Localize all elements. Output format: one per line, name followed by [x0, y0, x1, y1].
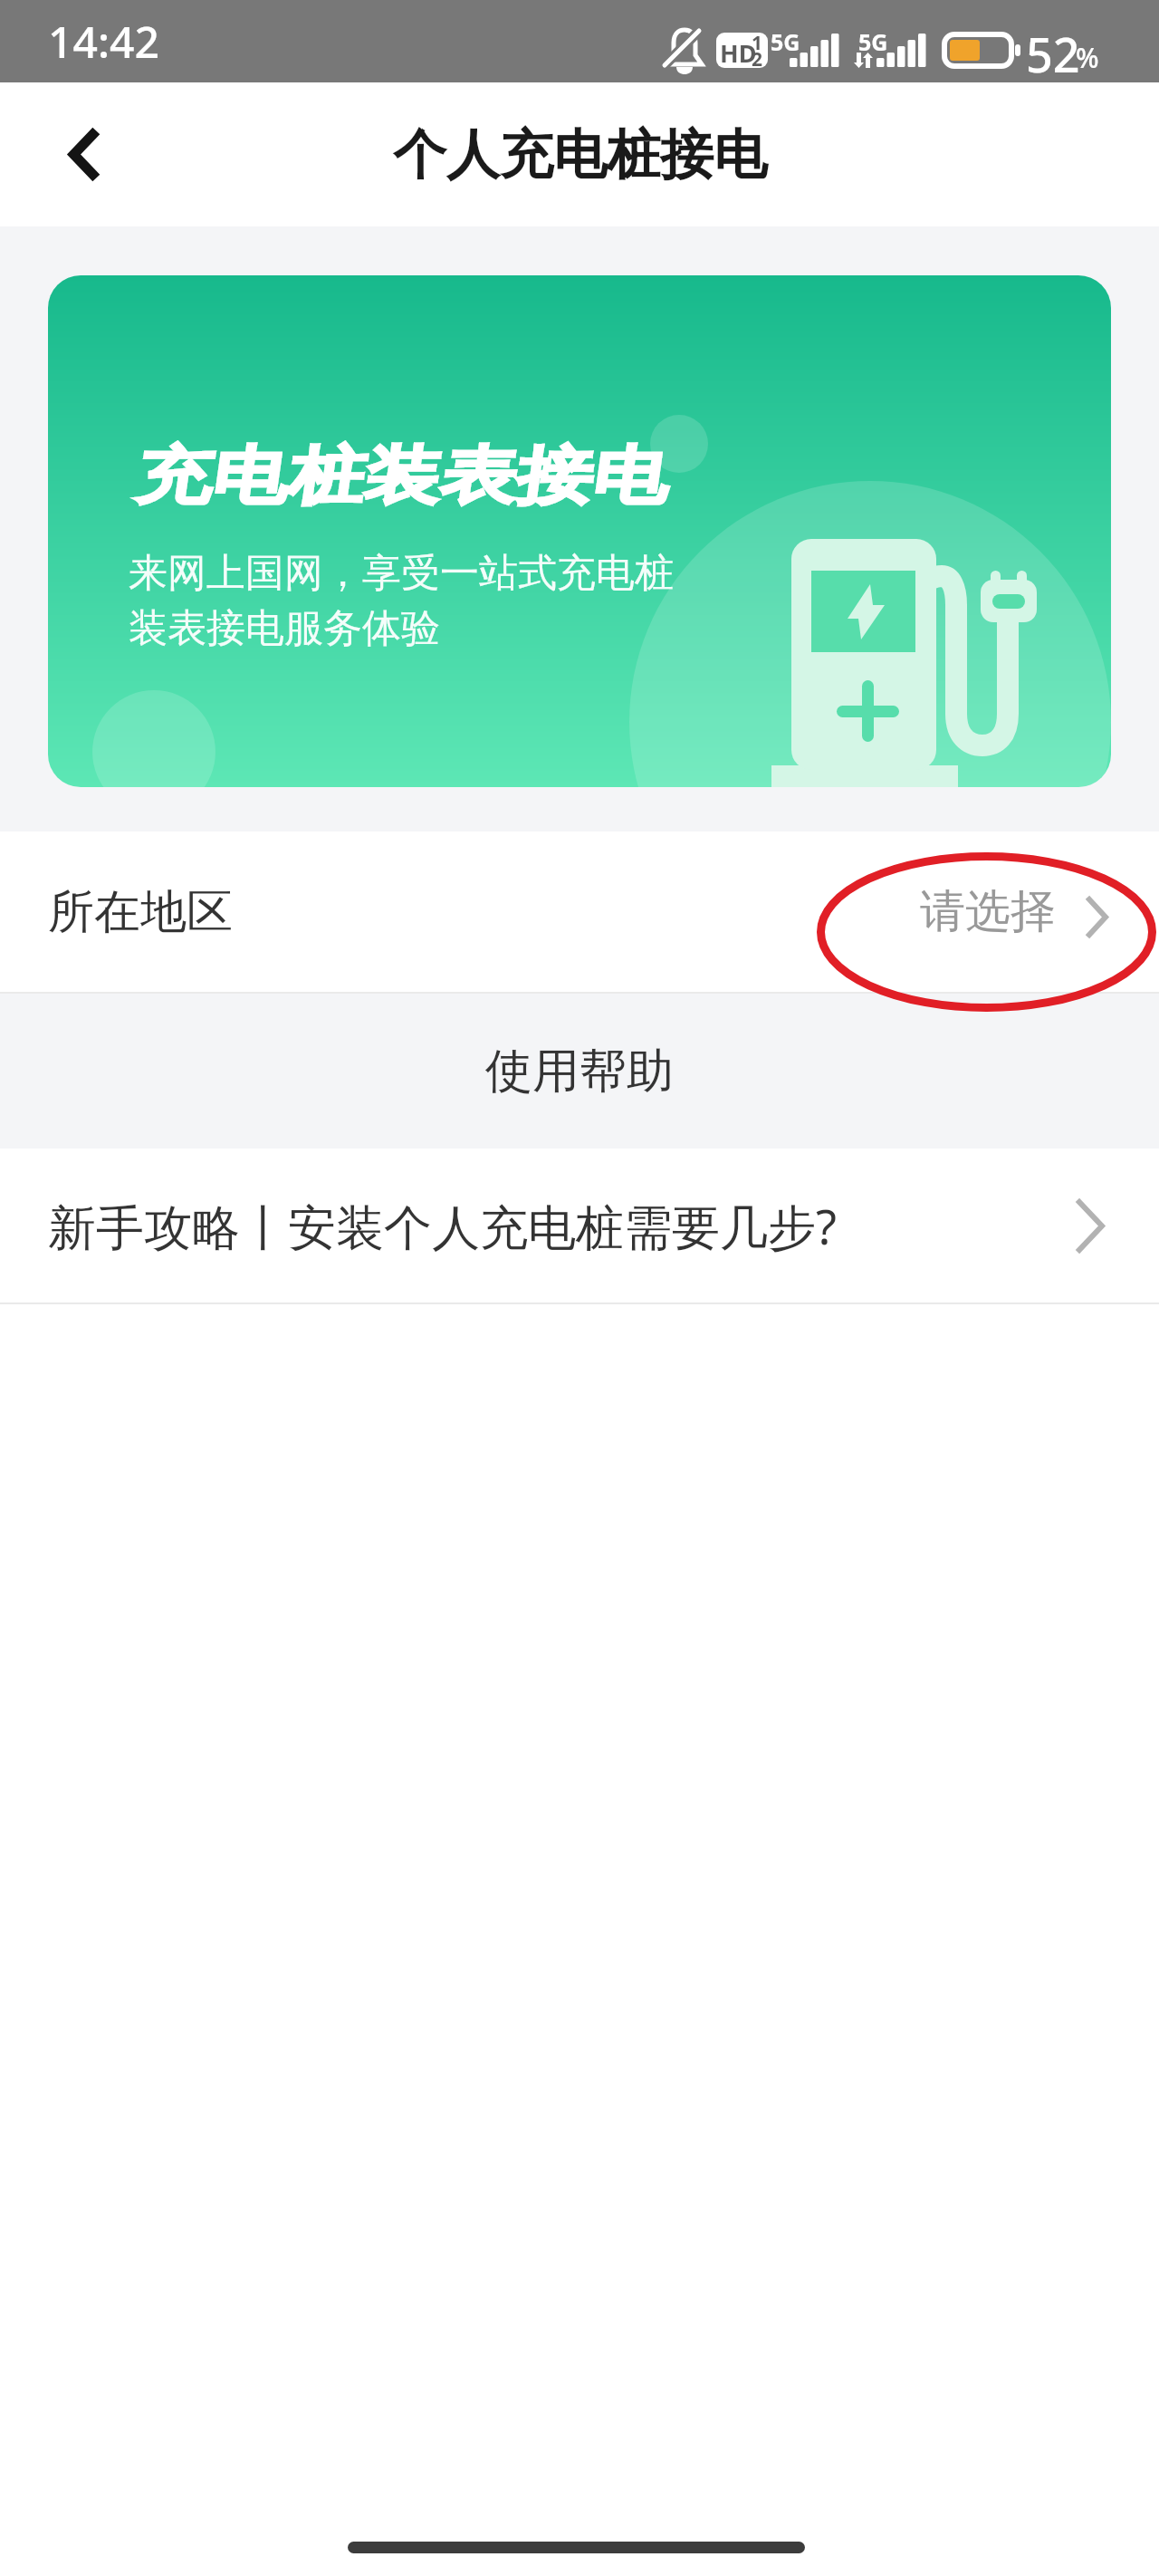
staticText: 个人充电桩接电 — [393, 121, 767, 188]
staticText: 所在地区 — [48, 883, 233, 941]
staticText: 5G — [858, 26, 888, 57]
staticText: 52 — [1026, 22, 1080, 86]
staticText: % — [1076, 39, 1099, 76]
staticText: 请选择 — [920, 883, 1056, 940]
staticText: HD — [720, 36, 757, 70]
staticText: 2 — [752, 46, 763, 72]
staticText: 5G — [771, 26, 800, 57]
button[interactable]: 所在地区 — [0, 831, 1159, 992]
staticText: 使用帮助 — [485, 1042, 674, 1101]
staticText: 14:42 — [48, 12, 159, 71]
button[interactable]: 来网上国网，享受一站式充电桩 装表接电服务体验 — [48, 275, 1111, 787]
button[interactable]: Back — [24, 82, 142, 226]
staticText: 新手攻略丨安装个人充电桩需要几步? — [48, 1193, 838, 1258]
staticText: 1 — [752, 30, 763, 56]
staticText: 来网上国网，享受一站式充电桩 装表接电服务体验 — [129, 549, 674, 653]
button[interactable]: 新手攻略丨安装个人充电桩需要几步? — [0, 1149, 1159, 1302]
